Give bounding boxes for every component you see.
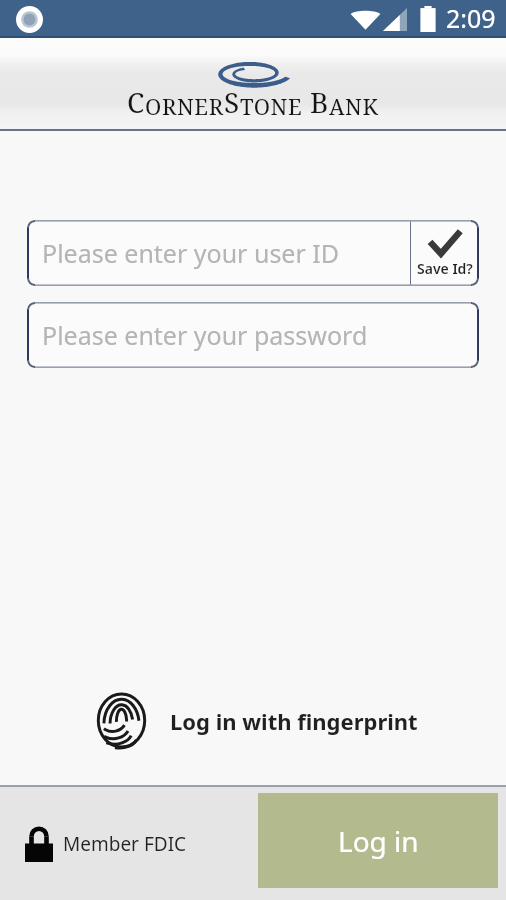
button[interactable]: Log in with fingerprint [96,693,418,748]
staticText: Please enter your password [42,318,368,352]
button[interactable]: Log in [258,793,498,888]
staticText: C [127,83,145,121]
staticText: Log in with fingerprint [170,706,418,736]
staticText: ORNER [145,91,224,121]
staticText: B [310,83,329,121]
staticText: Please enter your user ID [42,236,340,270]
staticText: Log in [338,822,419,860]
staticText: ANK [329,91,379,121]
staticText: Save Id? [417,259,473,278]
button[interactable]: Member FDIC [25,825,187,862]
button[interactable]: Please enter your user ID [27,220,479,286]
staticText: Member FDIC [63,831,187,857]
staticText: TONE [240,91,303,121]
staticText: S [224,83,240,121]
button[interactable]: Please enter your password [27,302,479,368]
staticText: 2:09 [446,1,496,35]
staticText [303,91,310,121]
button[interactable]: Save Id [411,221,479,285]
